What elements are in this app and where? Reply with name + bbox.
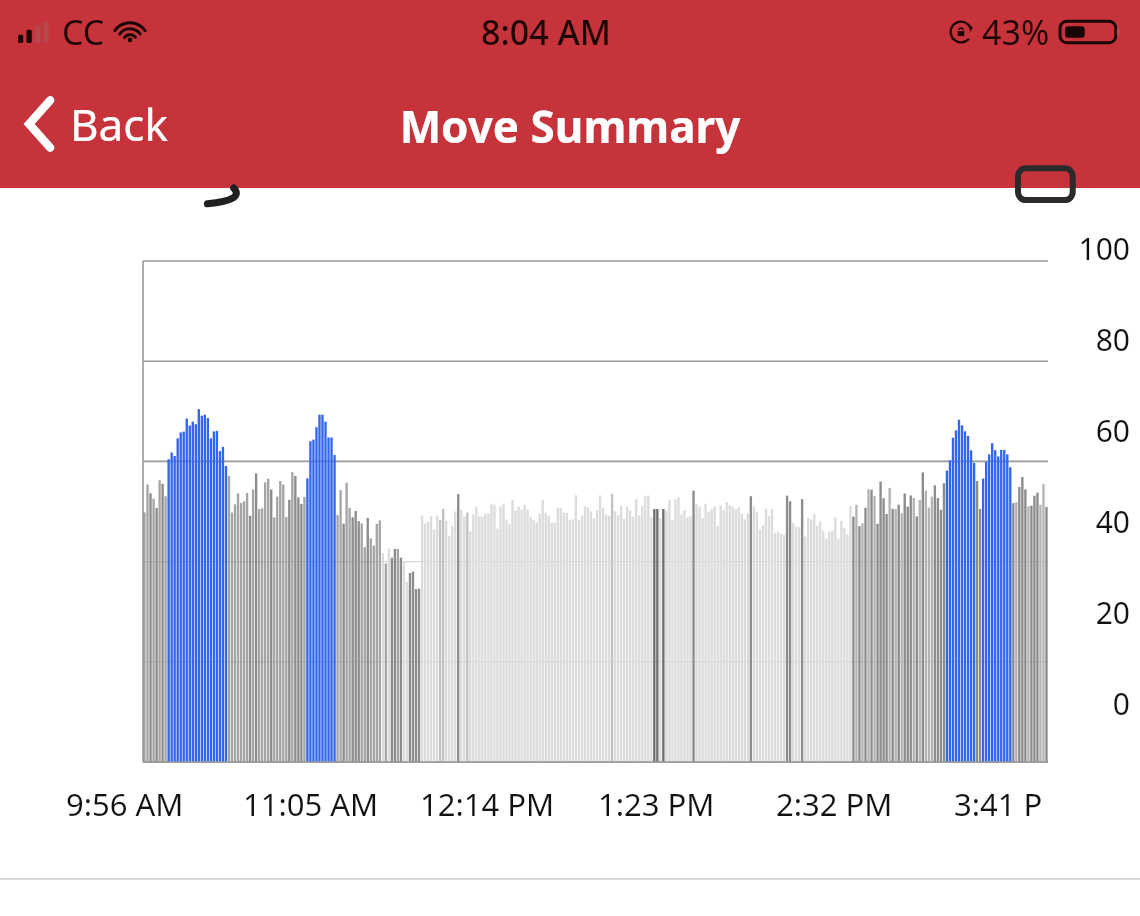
staticText: 100 <box>1012 228 1130 269</box>
staticText: CC <box>62 9 105 55</box>
staticText: Back <box>70 94 168 154</box>
staticText: 11:05 AM <box>243 783 379 825</box>
staticText: 1:23 PM <box>598 783 715 825</box>
staticText: 20 <box>1012 592 1130 633</box>
staticText: 60 <box>1012 410 1130 451</box>
staticText: 12:14 PM <box>420 783 555 825</box>
staticText: 2:32 PM <box>776 783 893 825</box>
staticText: 40 <box>1012 501 1130 542</box>
staticText: 3:41 P <box>954 783 1043 825</box>
staticText: 0 <box>1012 683 1130 724</box>
staticText: 43% <box>982 9 1050 55</box>
staticText: 80 <box>1012 319 1130 360</box>
staticText: 8:04 AM <box>481 9 611 55</box>
staticText: 9:56 AM <box>66 783 184 825</box>
button[interactable]: Back <box>14 88 178 160</box>
staticText: Move Summary <box>0 96 1140 156</box>
